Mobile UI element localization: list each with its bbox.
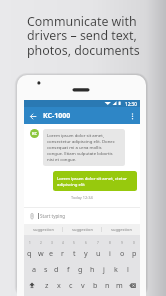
- button[interactable]: h: [86, 263, 98, 275]
- button[interactable]: g: [74, 263, 86, 275]
- staticText: m: [116, 280, 123, 290]
- staticText: t: [73, 248, 76, 258]
- staticText: 0: [133, 241, 135, 245]
- staticText: y: [84, 248, 88, 258]
- staticText: nisi et congue.: [47, 156, 77, 162]
- staticText: congue. Etiam vulputate lobortis: [47, 150, 113, 156]
- button[interactable]: Start typing: [24, 208, 140, 224]
- button[interactable]: b: [89, 279, 101, 291]
- staticText: q: [27, 248, 32, 258]
- staticText: v: [81, 280, 85, 290]
- button[interactable]: a: [29, 263, 40, 275]
- staticText: adipiscing elit: [57, 181, 85, 187]
- staticText: i: [109, 248, 111, 258]
- staticText: f: [67, 264, 70, 274]
- button[interactable]: c: [65, 279, 77, 291]
- staticText: j: [103, 264, 105, 274]
- button[interactable]: l: [122, 263, 134, 275]
- staticText: h: [90, 264, 95, 274]
- button[interactable]: n: [101, 279, 113, 291]
- button[interactable]: suggestion: [63, 224, 101, 235]
- staticText: 8: [109, 241, 111, 245]
- button[interactable]: s: [40, 263, 51, 275]
- button[interactable]: d: [51, 263, 62, 275]
- button[interactable]: 6: [80, 242, 92, 258]
- staticText: KC-1000: [43, 111, 71, 121]
- staticText: b: [93, 280, 98, 290]
- staticText: 9: [121, 241, 123, 245]
- button[interactable]: 4: [57, 242, 68, 258]
- button[interactable]: suggestion: [102, 224, 140, 235]
- staticText: z: [45, 280, 49, 290]
- staticText: 3: [51, 241, 53, 245]
- staticText: suggestion: [111, 227, 132, 232]
- staticText: consequat mi a urna mollis: [47, 144, 102, 150]
- staticText: 12:30: [125, 101, 137, 107]
- staticText: c: [69, 280, 73, 290]
- button[interactable]: suggestion: [24, 224, 62, 235]
- staticText: u: [96, 248, 101, 258]
- button[interactable]: 1: [24, 242, 35, 258]
- staticText: Lorem ipsum dolor sit amet, ctetur: [57, 175, 128, 181]
- button[interactable]: 7: [92, 242, 104, 258]
- button[interactable]: v: [77, 279, 89, 291]
- staticText: r: [61, 248, 64, 258]
- button[interactable]: Back: [24, 107, 43, 125]
- staticText: consectetur adipiscing elit. Donec: [47, 138, 115, 144]
- staticText: Today 12:34: [71, 195, 93, 200]
- staticText: Start typing: [40, 213, 66, 219]
- staticText: o: [120, 248, 125, 258]
- button[interactable]: 3: [46, 242, 57, 258]
- button[interactable]: k: [110, 263, 122, 275]
- button[interactable]: 5: [68, 242, 80, 258]
- staticText: g: [78, 264, 83, 274]
- button[interactable]: Backspace: [125, 279, 140, 291]
- staticText: s: [44, 264, 48, 274]
- button[interactable]: z: [40, 279, 53, 291]
- staticText: k: [114, 264, 118, 274]
- staticText: 1: [29, 241, 31, 245]
- staticText: d: [54, 264, 59, 274]
- staticText: n: [105, 280, 110, 290]
- staticText: l: [127, 264, 129, 274]
- button[interactable]: j: [98, 263, 110, 275]
- staticText: e: [49, 248, 54, 258]
- staticText: KC: [32, 131, 38, 136]
- button[interactable]: 9: [116, 242, 128, 258]
- staticText: w: [38, 248, 44, 258]
- staticText: 6: [85, 241, 87, 245]
- button[interactable]: f: [62, 263, 74, 275]
- button[interactable]: Shift: [24, 279, 40, 291]
- staticText: p: [132, 248, 137, 258]
- button[interactable]: 0: [128, 242, 140, 258]
- staticText: 7: [97, 241, 99, 245]
- button[interactable]: 2: [35, 242, 46, 258]
- staticText: Communicate with drivers – send text, ph…: [27, 13, 140, 59]
- button[interactable]: x: [53, 279, 65, 291]
- button[interactable]: 8: [104, 242, 116, 258]
- staticText: 5: [73, 241, 75, 245]
- staticText: suggestion: [72, 227, 93, 232]
- staticText: 2: [40, 241, 42, 245]
- button[interactable]: m: [113, 279, 125, 291]
- button[interactable]: More options: [126, 107, 138, 125]
- staticText: 4: [62, 241, 64, 245]
- staticText: suggestion: [33, 227, 54, 232]
- staticText: x: [57, 280, 61, 290]
- staticText: Lorem ipsum dolor sit amet,: [47, 132, 104, 138]
- staticText: a: [32, 264, 37, 274]
